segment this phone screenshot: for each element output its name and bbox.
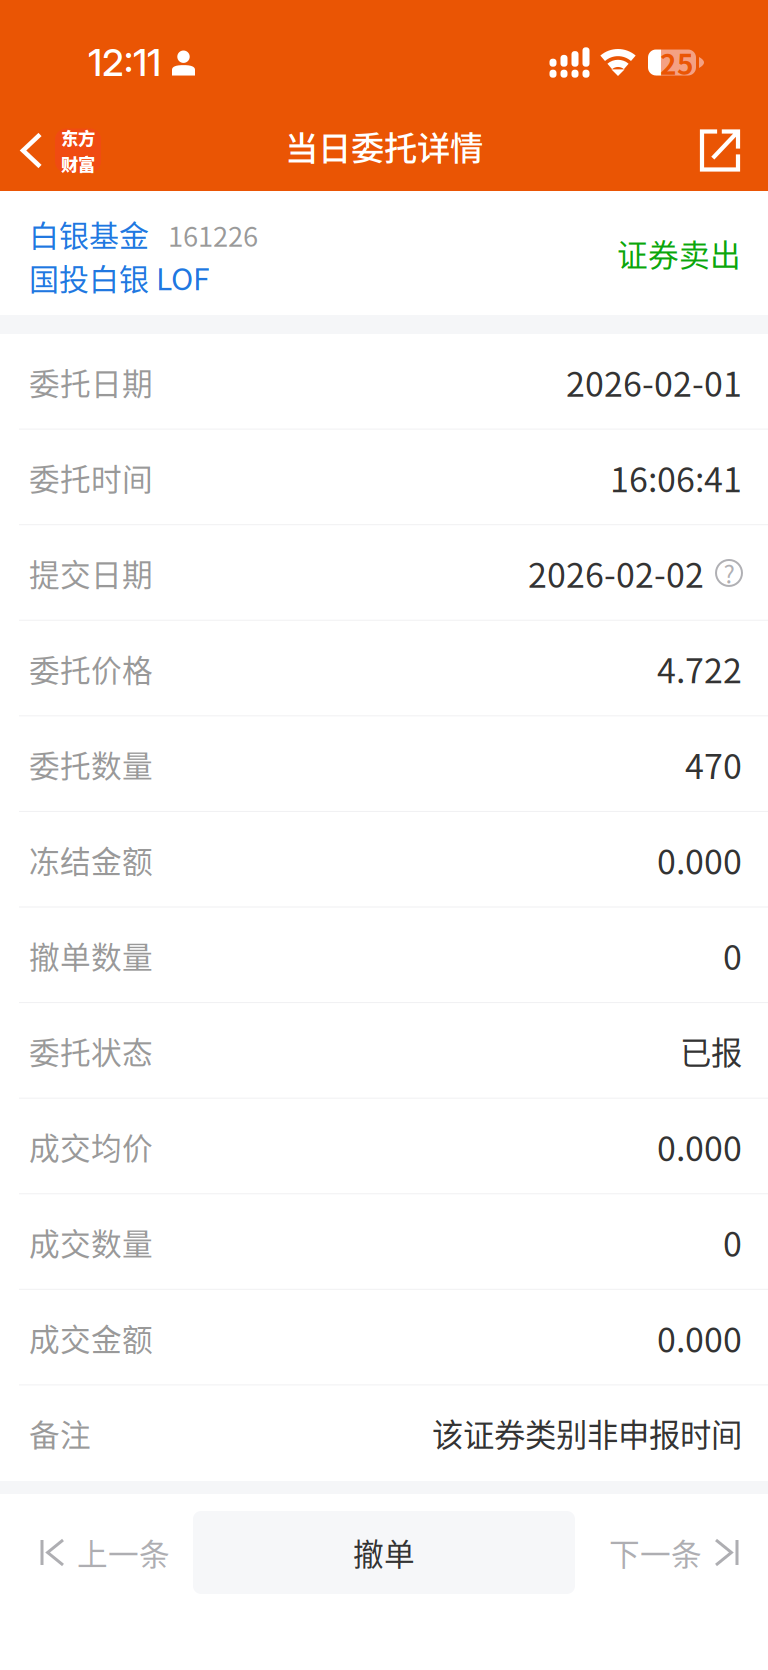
staticText: 2026-02-01 (566, 357, 742, 406)
staticText: 委托数量 (29, 742, 153, 786)
staticText: 该证券类别非申报时间 (432, 1410, 742, 1456)
staticText: 委托时间 (29, 455, 153, 500)
staticText: 成交均价 (29, 1124, 153, 1169)
staticText: 东方 (61, 125, 95, 150)
button[interactable]: 撤单 (193, 1511, 575, 1594)
staticText: 0.000 (657, 1122, 742, 1171)
staticText: 25 (660, 42, 694, 83)
staticText: 成交数量 (29, 1220, 153, 1264)
staticText: 撤单 (353, 1530, 415, 1575)
staticText: 当日委托详情 (285, 122, 483, 170)
staticText: 委托状态 (29, 1029, 153, 1073)
staticText: 成交金额 (29, 1315, 153, 1360)
staticText: 470 (685, 739, 742, 789)
staticText: 提交日期 (29, 551, 153, 595)
staticText: 16:06:41 (610, 453, 742, 502)
button[interactable]: 返回 (0, 110, 115, 191)
staticText: 0 (723, 931, 742, 980)
staticText: 冻结金额 (29, 837, 153, 882)
staticText: 4.722 (657, 644, 742, 693)
staticText: ? (723, 556, 734, 590)
staticText: 0.000 (657, 835, 742, 884)
staticText: 0 (723, 1217, 742, 1267)
staticText: 白银基金 (29, 212, 149, 255)
staticText: 撤单数量 (29, 933, 153, 977)
staticText: 财富 (61, 151, 95, 176)
staticText: 委托日期 (29, 360, 153, 404)
staticText: 委托价格 (29, 646, 153, 691)
staticText: 上一条 (77, 1530, 170, 1575)
staticText: 0.000 (657, 1313, 742, 1362)
staticText: 证券卖出 (617, 231, 741, 275)
staticText: 2026-02-02 (528, 548, 704, 598)
staticText: 12:11 (88, 40, 161, 85)
button[interactable]: 下一条 (575, 1511, 768, 1594)
staticText: 161226 (168, 215, 258, 255)
button[interactable]: 上一条 (0, 1511, 193, 1594)
staticText: 国投白银 LOF (29, 255, 210, 299)
staticText: 已报 (680, 1028, 742, 1074)
button[interactable]: 分享 (682, 110, 768, 191)
staticText: 备注 (29, 1411, 91, 1455)
staticText: 下一条 (609, 1530, 702, 1575)
